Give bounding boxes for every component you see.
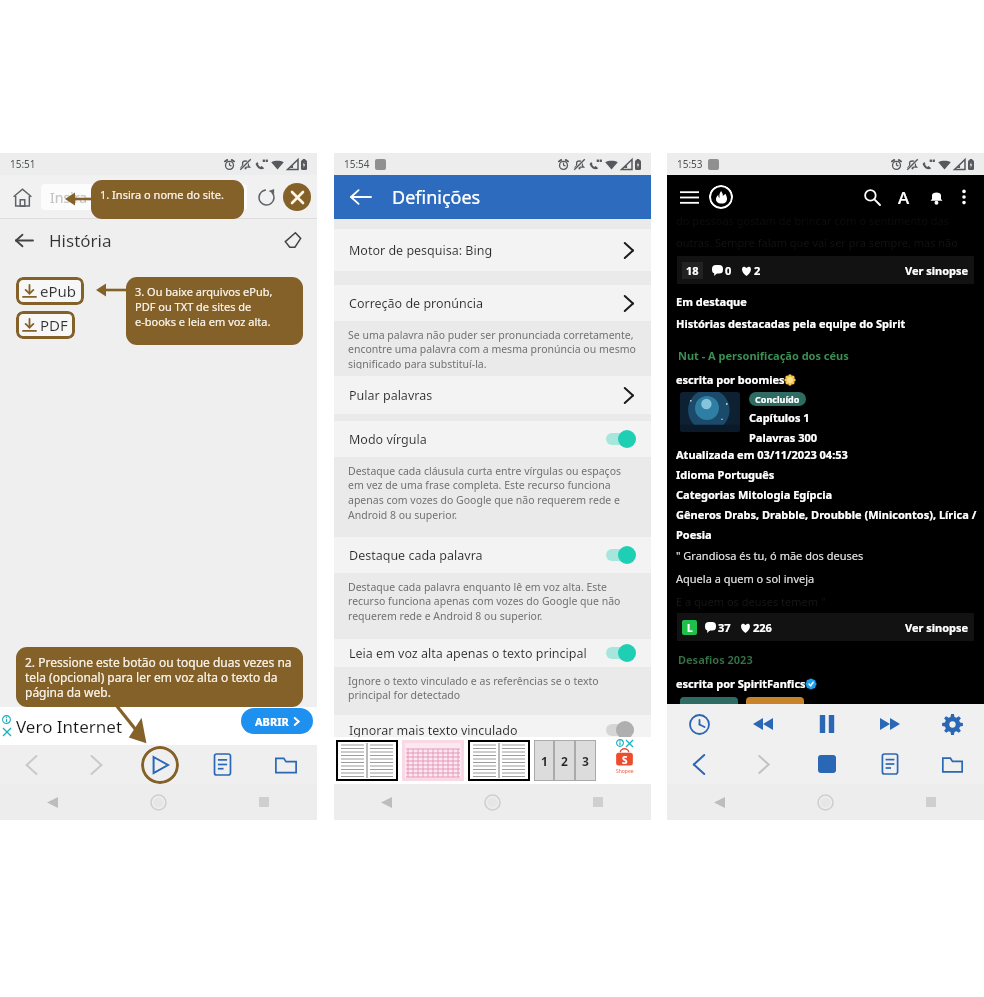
button[interactable]: Motor de pesquisa: Bing <box>334 229 651 271</box>
staticText: Leia em voz alta apenas o texto principa… <box>349 645 587 662</box>
button[interactable]: Forward <box>858 704 921 744</box>
button[interactable]: Close ad <box>626 740 633 747</box>
button[interactable]: Close ad <box>3 728 11 736</box>
staticText: 2 <box>754 263 761 278</box>
button[interactable]: Back <box>334 784 439 820</box>
button[interactable]: Back <box>0 784 105 820</box>
button[interactable]: L <box>677 613 974 641</box>
button[interactable]: Previous <box>0 745 64 784</box>
staticText: 37 <box>718 620 731 635</box>
button[interactable]: Close <box>283 183 311 211</box>
staticText: Nut - A personificação dos céus <box>678 348 849 363</box>
staticText: Palavras 300 <box>749 430 818 445</box>
button[interactable]: Modo vírgula <box>334 421 651 457</box>
button[interactable]: Timer <box>667 704 731 744</box>
button[interactable]: Rewind <box>731 704 795 744</box>
staticText: 1. Insira o nome do site. <box>100 187 224 202</box>
staticText: 18 <box>686 263 699 278</box>
button[interactable]: Next <box>731 744 795 784</box>
button[interactable]: Next <box>64 745 128 784</box>
staticText: 2. Pressione este botão ou toque duas ve… <box>25 654 292 700</box>
staticText: 1 <box>541 753 548 769</box>
button[interactable]: Back <box>667 784 772 820</box>
button[interactable]: Text <box>191 745 254 784</box>
button[interactable]: Pular palavras <box>334 376 651 414</box>
button[interactable]: Back <box>11 227 37 253</box>
button[interactable]: Recents <box>878 784 984 820</box>
staticText: Destaque cada palavra <box>349 547 483 564</box>
button[interactable]: Erase <box>280 227 306 253</box>
staticText: 15:51 <box>10 157 36 171</box>
staticText: Se uma palavra não puder ser pronunciada… <box>348 328 645 369</box>
staticText: Motor de pesquisa: Bing <box>349 242 493 259</box>
staticText: Categorias Mitologia Egípcia <box>676 487 833 502</box>
button[interactable]: ePub <box>16 277 84 305</box>
button[interactable]: Notifications <box>924 185 948 209</box>
button[interactable]: Menu <box>677 185 701 209</box>
button[interactable]: Correção de pronúncia <box>334 285 651 321</box>
staticText: Em destaque <box>676 294 747 309</box>
button[interactable]: Ad info <box>2 715 11 724</box>
button[interactable]: Pause <box>795 704 858 744</box>
staticText: do pessoas gostam de brincar com o senti… <box>676 213 949 228</box>
button[interactable]: Ad info <box>616 739 624 747</box>
staticText: História <box>49 229 112 252</box>
button[interactable]: Files <box>921 744 984 784</box>
button[interactable]: Stop <box>795 744 858 784</box>
staticText: Ver sinopse <box>905 620 969 635</box>
button[interactable]: ABRIR <box>241 708 313 734</box>
button[interactable]: Search <box>860 185 884 209</box>
button[interactable]: Font size <box>892 185 916 209</box>
staticText: Histórias destacadas pela equipe do Spir… <box>676 316 906 331</box>
button[interactable]: Text <box>858 744 921 784</box>
staticText: Vero Internet <box>16 715 123 738</box>
button[interactable]: Play <box>128 745 191 784</box>
staticText: outras. Sempre falam que vai ser pra sem… <box>676 235 958 250</box>
staticText: Modo vírgula <box>349 431 427 448</box>
button[interactable]: Ignorar mais texto vinculado <box>334 715 651 745</box>
staticText: Atualizada em 03/11/2023 04:53 <box>676 447 848 462</box>
button[interactable]: Back <box>347 183 375 211</box>
staticText: Destaque cada palavra enquanto lê em voz… <box>348 580 621 623</box>
button[interactable]: Logo <box>709 185 733 209</box>
staticText: Desafios 2023 <box>678 652 753 667</box>
staticText: Ver sinopse <box>905 263 969 278</box>
staticText: Concluído <box>755 393 800 405</box>
staticText: " Grandiosa és tu, ó mãe dos deuses <box>676 548 864 563</box>
button[interactable]: Previous <box>667 744 731 784</box>
staticText: Idioma Português <box>676 467 775 482</box>
staticText: ePub <box>40 281 77 301</box>
button[interactable]: Home <box>6 181 38 213</box>
button[interactable]: Destaque cada palavra <box>334 537 651 573</box>
staticText: S <box>622 753 628 767</box>
staticText: E a quem os deuses temem " <box>676 594 826 609</box>
button[interactable]: PDF <box>16 311 75 339</box>
staticText: 2 <box>561 753 568 769</box>
staticText: Correção de pronúncia <box>349 295 483 312</box>
button[interactable]: Home <box>772 784 878 820</box>
button[interactable]: Insira <box>41 184 247 210</box>
button[interactable]: Leia em voz alta apenas o texto principa… <box>334 639 651 667</box>
staticText: 0 <box>725 263 732 278</box>
staticText: Definições <box>392 185 481 210</box>
button[interactable]: Recents <box>211 784 317 820</box>
staticText: Destaque cada cláusula curta entre vírgu… <box>348 464 622 522</box>
staticText: Ignorar mais texto vinculado <box>349 722 518 739</box>
button[interactable]: Reload <box>252 183 280 211</box>
button[interactable]: Desafios 2023 <box>667 651 984 668</box>
staticText: escrita por SpiritFanfics <box>676 676 806 691</box>
staticText: 3 <box>582 753 589 769</box>
button[interactable]: 18 <box>677 256 974 284</box>
button[interactable]: Recents <box>545 784 651 820</box>
staticText: Ignore o texto vinculado e as referência… <box>348 674 599 702</box>
button[interactable]: More <box>954 187 974 207</box>
staticText: 226 <box>753 620 772 635</box>
staticText: Poesia <box>676 527 712 542</box>
button[interactable]: Nut - A personificação dos céus <box>667 347 984 364</box>
button[interactable]: Home <box>439 784 545 820</box>
staticText: A <box>898 186 910 209</box>
button[interactable]: Settings <box>921 704 984 744</box>
button[interactable]: Home <box>105 784 211 820</box>
button[interactable]: Files <box>254 745 317 784</box>
staticText: Aquela a quem o sol inveja <box>676 571 815 586</box>
